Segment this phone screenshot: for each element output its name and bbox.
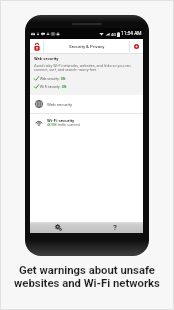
button[interactable]: Web security [30,95,143,113]
staticText: traffic scanned. [57,123,81,127]
button[interactable]: Settings [30,222,86,233]
button[interactable]: App logo [30,39,43,54]
staticText: ? [113,223,117,232]
staticText: Wi-Fi security [47,118,75,123]
button[interactable]: Add [130,39,143,54]
staticText: 11:54 AM [121,31,142,37]
button[interactable]: Wi-Fi security [30,114,143,132]
staticText: Security & Privacy [69,44,105,49]
staticText: Web security: [40,77,60,81]
staticText: 4G [111,32,116,37]
staticText: Wi-Fi security: [40,85,61,89]
staticText: ON [61,85,67,89]
staticText: Avoid risky Wi-Fi networks, websites, an… [34,63,131,72]
staticText: Get warnings about unsafe websites and W… [0,264,174,290]
staticText: ON [60,77,66,81]
staticText: 48 MB [47,123,57,127]
button[interactable]: Help [86,222,143,233]
staticText: Web security [34,56,59,61]
staticText: Web security [47,102,73,107]
